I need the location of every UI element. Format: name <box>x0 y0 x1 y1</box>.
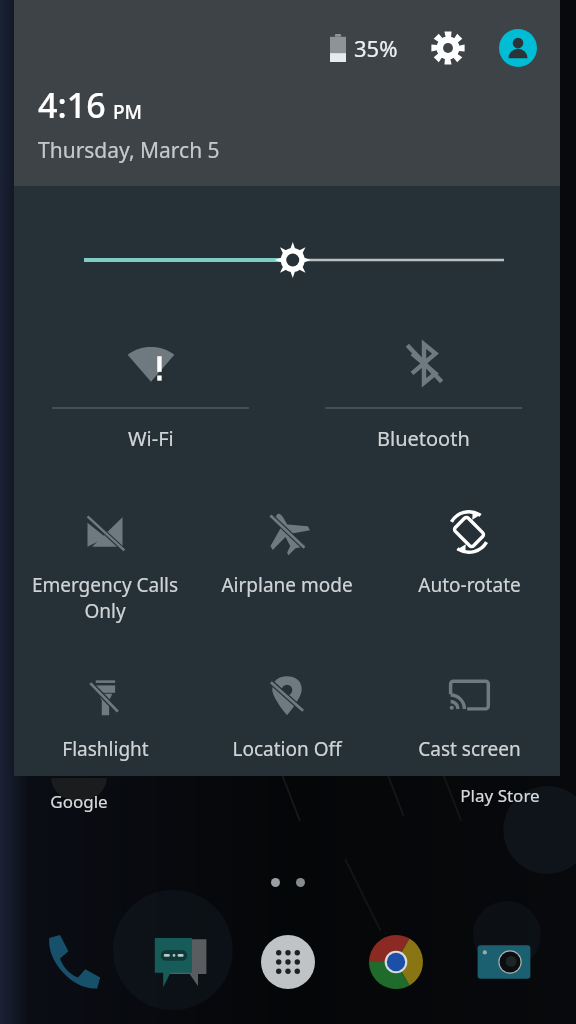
button[interactable]: 35% <box>328 33 400 63</box>
button[interactable]: Location Off <box>196 668 378 762</box>
button[interactable]: Emergency Calls Only <box>14 504 196 624</box>
staticText: Google <box>50 790 108 813</box>
button[interactable]: Airplane mode <box>196 504 378 598</box>
button[interactable]: Auto-rotate <box>378 504 560 598</box>
button[interactable]: Flashlight <box>14 668 196 762</box>
button[interactable]: Chrome <box>360 926 432 998</box>
button[interactable]: Brightness <box>14 234 560 286</box>
staticText: 4:16 <box>38 82 106 128</box>
button[interactable]: Wi-Fi <box>14 332 287 452</box>
staticText: Wi-Fi <box>128 425 174 452</box>
staticText: Thursday, March 5 <box>38 136 220 165</box>
staticText: Flashlight <box>62 736 149 762</box>
button[interactable]: Phone <box>36 926 108 998</box>
button[interactable]: Messages <box>144 926 216 998</box>
staticText: Auto-rotate <box>418 572 521 598</box>
staticText: Airplane mode <box>221 572 353 598</box>
staticText: PM <box>113 99 143 125</box>
button[interactable]: User profile <box>496 26 540 70</box>
staticText: Play Store <box>460 784 540 807</box>
button[interactable]: Bluetooth <box>287 332 560 452</box>
button[interactable]: Settings <box>426 26 470 70</box>
staticText: Cast screen <box>418 736 521 762</box>
staticText: Emergency Calls Only <box>18 572 192 624</box>
staticText: 35% <box>354 33 398 63</box>
button[interactable]: Camera <box>468 926 540 998</box>
button[interactable]: All apps <box>252 926 324 998</box>
button[interactable]: Cast screen <box>378 668 560 762</box>
staticText: Bluetooth <box>377 425 470 452</box>
staticText: Location Off <box>232 736 342 762</box>
